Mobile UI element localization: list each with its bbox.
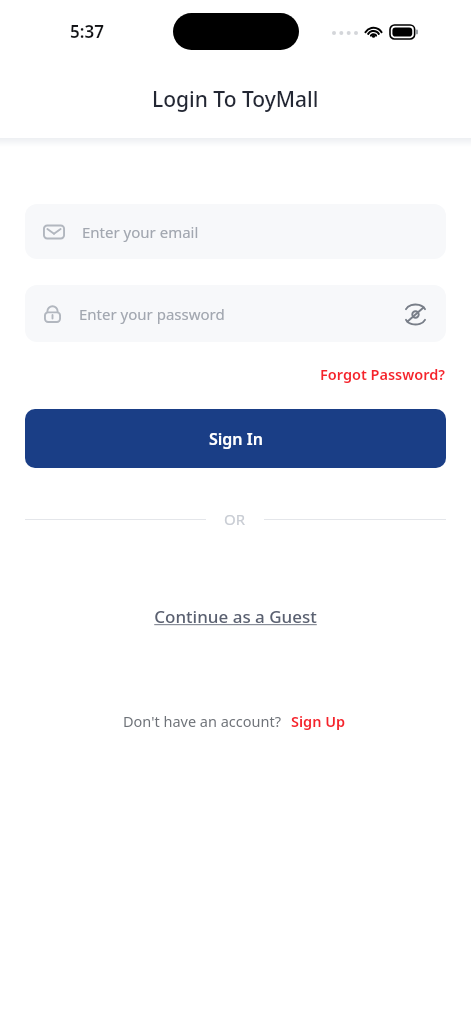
button[interactable]: Show password <box>400 299 430 329</box>
button[interactable]: Sign In <box>25 409 446 468</box>
staticText: 5:37 <box>70 20 104 43</box>
staticText: Sign In <box>209 428 263 450</box>
staticText: OR <box>224 509 246 529</box>
button[interactable]: Continue as a Guest <box>148 602 323 631</box>
button[interactable]: Sign Up <box>289 709 348 733</box>
staticText: Enter your email <box>82 222 199 242</box>
staticText: Don't have an account? <box>123 711 281 731</box>
staticText: Sign Up <box>291 711 346 731</box>
staticText: Continue as a Guest <box>154 605 317 628</box>
staticText: Login To ToyMall <box>152 85 319 114</box>
button[interactable]: Enter your email <box>25 204 446 259</box>
staticText: Enter your password <box>79 304 225 324</box>
button[interactable]: Forgot Password? <box>320 362 446 386</box>
staticText: Forgot Password? <box>320 364 446 384</box>
button[interactable]: Enter your password <box>25 285 446 342</box>
